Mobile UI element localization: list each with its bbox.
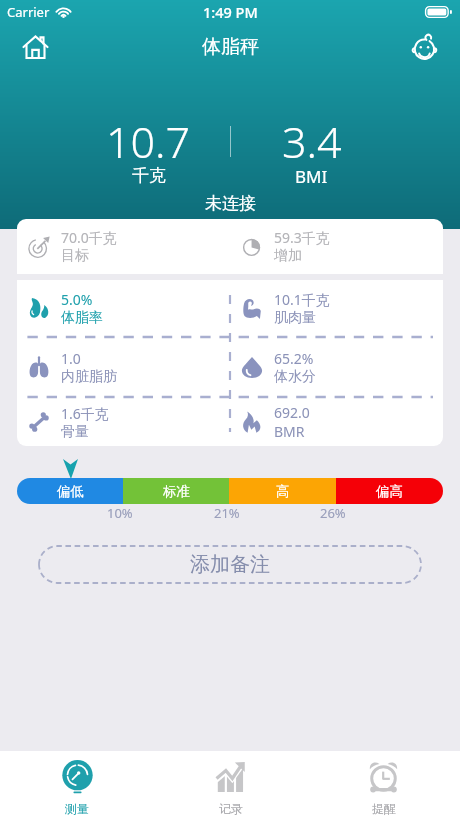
button[interactable]: Home xyxy=(12,24,58,70)
staticText: 体脂秤 xyxy=(202,35,259,59)
staticText: 10.7 xyxy=(106,112,191,171)
staticText: 增加 xyxy=(274,247,302,265)
staticText: 提醒 xyxy=(372,801,396,816)
button[interactable]: 1.0 xyxy=(17,338,230,396)
staticText: 标准 xyxy=(163,483,190,500)
staticText: 692.0 xyxy=(274,403,310,422)
staticText: 65.2% xyxy=(274,349,314,368)
button[interactable]: 测量 xyxy=(0,751,154,818)
button[interactable]: 70.0千克 xyxy=(17,219,230,274)
button[interactable]: 59.3千克 xyxy=(230,219,443,274)
button[interactable]: 10.1千克 xyxy=(230,280,443,336)
staticText: 目标 xyxy=(61,247,89,265)
button[interactable]: 记录 xyxy=(154,751,307,818)
button[interactable]: 1.6千克 xyxy=(17,398,230,446)
button[interactable]: 添加备注 xyxy=(38,545,422,584)
staticText: BMR xyxy=(274,422,305,441)
staticText: 高 xyxy=(276,483,290,500)
staticText: 70.0千克 xyxy=(61,228,117,247)
staticText: 未连接 xyxy=(205,193,256,214)
staticText: 1.0 xyxy=(61,349,81,368)
button[interactable]: 5.0% xyxy=(17,280,230,336)
button[interactable]: 偏低 xyxy=(17,478,123,504)
staticText: 偏低 xyxy=(57,483,84,500)
staticText: 测量 xyxy=(65,801,89,816)
button[interactable]: Profile xyxy=(402,24,448,70)
button[interactable]: 偏高 xyxy=(336,478,443,504)
staticText: 10.1千克 xyxy=(274,290,330,309)
staticText: 1:49 PM xyxy=(203,2,258,22)
button[interactable]: 高 xyxy=(229,478,336,504)
staticText: 21% xyxy=(214,504,240,522)
button[interactable]: 提醒 xyxy=(307,751,460,818)
staticText: BMI xyxy=(295,165,328,188)
staticText: 添加备注 xyxy=(190,552,270,577)
staticText: 3.4 xyxy=(282,112,342,171)
button[interactable]: 692.0 xyxy=(230,398,443,446)
staticText: 内脏脂肪 xyxy=(61,368,117,386)
staticText: 5.0% xyxy=(61,290,93,309)
staticText: 10% xyxy=(107,504,133,522)
staticText: 59.3千克 xyxy=(274,228,330,247)
staticText: 骨量 xyxy=(61,423,89,441)
staticText: 体脂率 xyxy=(61,309,103,327)
staticText: Carrier xyxy=(7,3,50,21)
button[interactable]: 标准 xyxy=(123,478,229,504)
staticText: 肌肉量 xyxy=(274,309,316,327)
staticText: 体水分 xyxy=(274,368,316,386)
staticText: 记录 xyxy=(219,801,243,816)
staticText: 1.6千克 xyxy=(61,404,109,423)
staticText: 千克 xyxy=(132,165,166,186)
staticText: 偏高 xyxy=(376,483,403,500)
staticText: 26% xyxy=(320,504,346,522)
button[interactable]: 65.2% xyxy=(230,338,443,396)
